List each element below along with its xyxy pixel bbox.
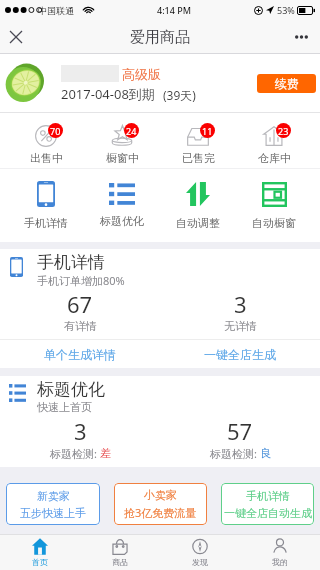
button[interactable]: Close <box>0 20 32 54</box>
staticText: 我的 <box>272 557 288 567</box>
staticText: 抢3亿免费流量 <box>124 505 197 520</box>
button[interactable]: 商品 <box>80 535 160 570</box>
button[interactable]: 70 <box>8 113 84 168</box>
staticText: 标题优化 <box>100 214 144 228</box>
staticText: 一键全店自动生成 <box>224 506 312 520</box>
button[interactable]: More options <box>283 20 320 54</box>
staticText: 发现 <box>192 557 208 567</box>
staticText: 2017-04-08到期 <box>61 85 155 103</box>
staticText: 手机详情 <box>24 216 68 230</box>
staticText: 差 <box>100 446 111 460</box>
button[interactable]: 手机详情 <box>221 483 314 525</box>
staticText: 3 <box>74 416 87 446</box>
staticText: 4:14 PM <box>157 4 191 16</box>
staticText: 53% <box>277 4 295 16</box>
button[interactable]: 续费 <box>257 74 316 93</box>
staticText: 67 <box>67 289 93 319</box>
button[interactable]: 标题优化 <box>84 169 160 242</box>
staticText: 有详情 <box>64 319 97 333</box>
button[interactable]: 新卖家 <box>6 483 100 525</box>
staticText: 自动调整 <box>176 216 220 230</box>
staticText: 3 <box>234 289 247 319</box>
staticText: 手机详情 <box>246 489 290 503</box>
staticText: 已售完 <box>182 151 215 165</box>
button[interactable]: 我的 <box>240 535 320 570</box>
staticText: 标题检测: <box>210 446 260 461</box>
button[interactable]: 11 <box>160 113 236 168</box>
staticText: 爱用商品 <box>130 28 190 47</box>
button[interactable]: 首页 <box>0 535 80 570</box>
button[interactable]: 24 <box>84 113 160 168</box>
staticText: 首页 <box>32 557 48 567</box>
staticText: 中国联通 <box>38 5 74 16</box>
staticText: 高级版 <box>122 66 161 82</box>
button[interactable]: 一键全店生成 <box>160 340 320 368</box>
staticText: 11 <box>202 125 213 137</box>
staticText: 24 <box>126 125 137 137</box>
button[interactable]: 单个生成详情 <box>0 340 160 368</box>
staticText: 无详情 <box>224 319 257 333</box>
staticText: 新卖家 <box>37 489 70 503</box>
staticText: 标题优化 <box>37 379 105 400</box>
staticText: 标题检测: <box>50 446 100 461</box>
button[interactable]: 小卖家 <box>114 483 207 525</box>
staticText: 手机详情 <box>37 252 105 273</box>
staticText: 商品 <box>112 557 128 567</box>
staticText: 仓库中 <box>258 151 291 165</box>
staticText: 快速上首页 <box>37 400 92 414</box>
staticText: 自动橱窗 <box>252 216 296 230</box>
staticText: 单个生成详情 <box>44 347 116 362</box>
staticText: 续费 <box>275 76 299 91</box>
staticText: 57 <box>227 416 253 446</box>
staticText: (39天) <box>163 87 196 103</box>
button[interactable]: 23 <box>236 113 312 168</box>
staticText: 橱窗中 <box>106 151 139 165</box>
staticText: 手机订单增加80% <box>37 273 125 288</box>
staticText: 良 <box>260 446 271 460</box>
button[interactable]: 自动调整 <box>160 169 236 242</box>
button[interactable]: 自动橱窗 <box>236 169 312 242</box>
staticText: 五步快速上手 <box>20 506 86 520</box>
staticText: 23 <box>278 125 289 137</box>
staticText: 小卖家 <box>144 488 177 502</box>
staticText: 出售中 <box>30 151 63 165</box>
button[interactable]: 手机详情 <box>8 169 84 242</box>
button[interactable]: 发现 <box>160 535 240 570</box>
staticText: 70 <box>50 125 61 137</box>
staticText: 一键全店生成 <box>204 347 276 362</box>
